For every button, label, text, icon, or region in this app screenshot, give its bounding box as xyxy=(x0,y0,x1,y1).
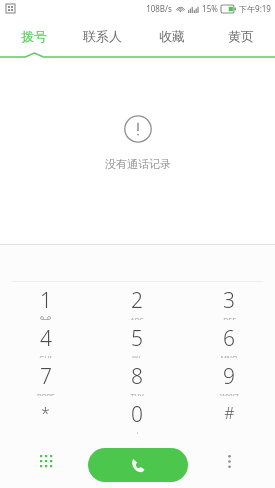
staticText: * xyxy=(41,402,50,424)
button[interactable]: 黄页 xyxy=(206,17,275,55)
button[interactable]: Show keypad xyxy=(32,447,60,475)
button[interactable]: 1 xyxy=(0,282,91,320)
staticText: 拨号 xyxy=(21,28,47,44)
staticText: 下午9:19 xyxy=(239,3,271,14)
staticText: 联系人 xyxy=(83,28,122,44)
button[interactable]: 0 xyxy=(91,396,183,434)
staticText: # xyxy=(224,402,235,424)
staticText: JKL xyxy=(132,354,142,358)
staticText: 7 xyxy=(40,362,52,391)
button[interactable]: 6 xyxy=(183,320,275,358)
staticText: 8 xyxy=(131,362,143,391)
button[interactable]: * xyxy=(0,396,91,434)
button[interactable]: Call xyxy=(88,448,188,482)
staticText: 黄页 xyxy=(228,28,254,44)
staticText: 没有通话记录 xyxy=(105,157,171,171)
staticText: 0 xyxy=(131,400,143,429)
button[interactable]: 拨号 xyxy=(0,17,68,55)
staticText: TUV xyxy=(130,392,144,396)
staticText: GHI xyxy=(39,354,52,358)
staticText: 4 xyxy=(40,324,52,353)
staticText: 3 xyxy=(223,286,235,315)
staticText: 9 xyxy=(223,362,235,391)
staticText: WXYZ xyxy=(220,392,239,396)
button[interactable]: # xyxy=(183,396,275,434)
staticText: MNO xyxy=(220,354,238,358)
button[interactable]: 7 xyxy=(0,358,91,396)
button[interactable]: 5 xyxy=(91,320,183,358)
staticText: 5 xyxy=(131,324,143,353)
staticText: 15% xyxy=(202,3,218,14)
staticText: DEF xyxy=(223,316,236,320)
button[interactable]: 2 xyxy=(91,282,183,320)
staticText: ABC xyxy=(130,316,144,320)
button[interactable]: 8 xyxy=(91,358,183,396)
staticText: + xyxy=(135,430,140,434)
staticText: PQRS xyxy=(37,392,55,396)
button[interactable]: 收藏 xyxy=(137,17,206,55)
staticText: 6 xyxy=(223,324,235,353)
button[interactable]: 联系人 xyxy=(68,17,137,55)
staticText: 2 xyxy=(131,286,143,315)
button[interactable]: 3 xyxy=(183,282,275,320)
button[interactable]: 4 xyxy=(0,320,91,358)
button[interactable]: 9 xyxy=(183,358,275,396)
button[interactable]: More options xyxy=(215,447,243,475)
staticText: 108B/s xyxy=(146,3,172,14)
staticText: 收藏 xyxy=(159,28,185,44)
staticText: 1 xyxy=(40,286,52,315)
